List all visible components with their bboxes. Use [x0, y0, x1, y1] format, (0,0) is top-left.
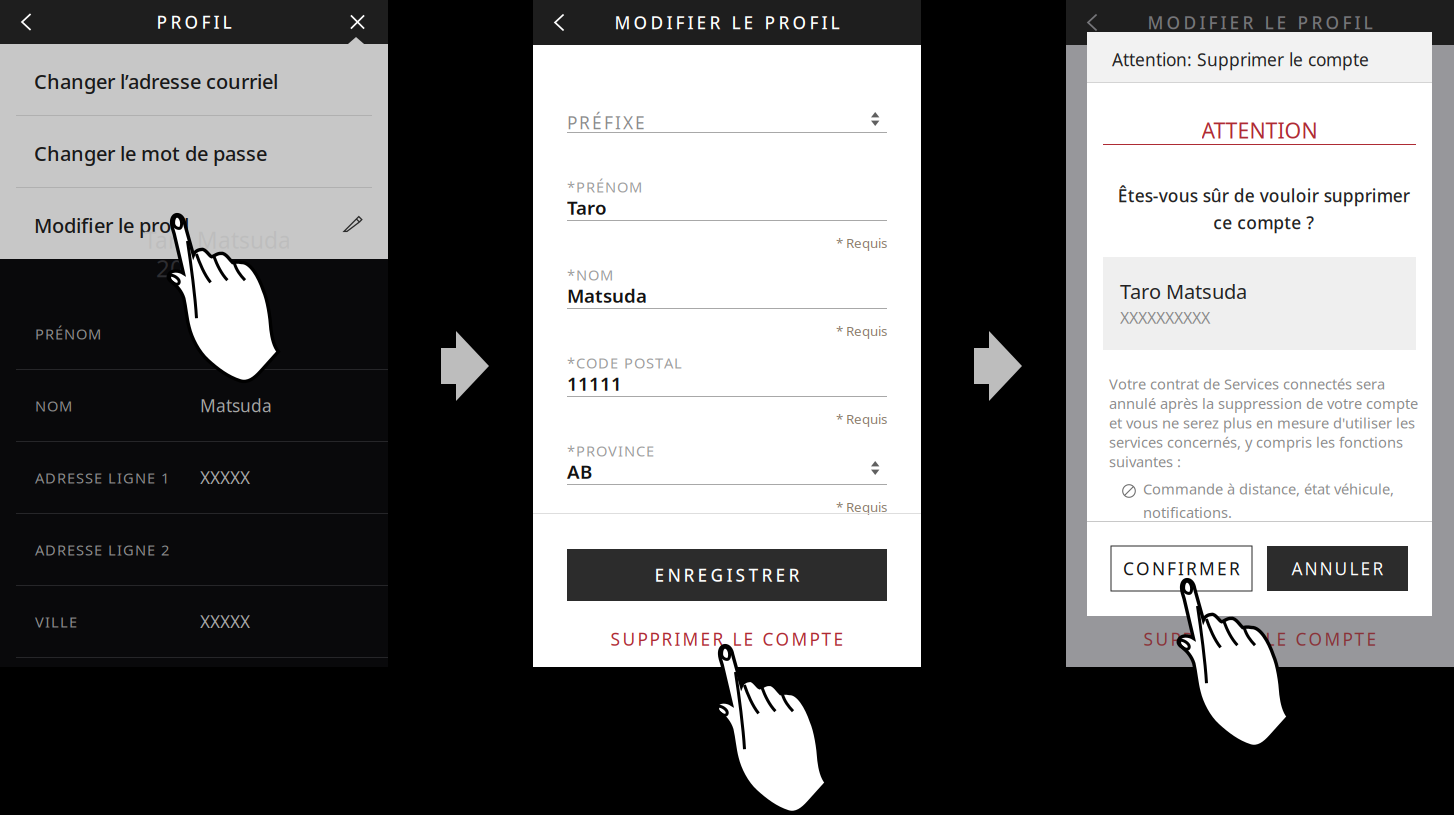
- staticText: Votre contrat de Services connectés sera…: [1109, 374, 1418, 471]
- staticText: S U P P R I M E R L E C O M P T E: [1143, 627, 1376, 650]
- staticText: Taro Matsuda: [144, 225, 291, 255]
- staticText: * Requis: [836, 498, 887, 516]
- staticText: P R É N O M: [35, 324, 101, 343]
- staticText: M O D I F I E R L E P R O F I L: [614, 11, 839, 34]
- staticText: Changer le mot de passe: [34, 140, 267, 167]
- staticText: A D R E S S E L I G N E 2: [35, 540, 169, 559]
- staticText: Changer l’adresse courriel: [34, 68, 278, 95]
- staticText: * P R O V I N C E: [567, 441, 654, 460]
- staticText: A N N U L E R: [1291, 557, 1383, 580]
- staticText: * C O D E P O S T A L: [567, 353, 682, 372]
- staticText: C O N F I R M E R: [1123, 557, 1240, 580]
- button[interactable]: Modifier le profil: [0, 187, 388, 259]
- staticText: Taro: [567, 195, 607, 220]
- staticText: Commande à distance, état véhicule, noti…: [1143, 479, 1394, 522]
- staticText: Taro Matsuda: [1120, 278, 1247, 305]
- button[interactable]: E N R E G I S T R E R: [533, 0, 887, 601]
- button[interactable]: S U P P R I M E R L E C O M P T E: [533, 0, 921, 650]
- staticText: P R É F I X E: [567, 111, 645, 134]
- staticText: * Requis: [836, 322, 887, 340]
- staticText: V I L L E: [35, 612, 77, 631]
- staticText: Modifier le profil: [34, 212, 189, 239]
- staticText: AB: [567, 459, 592, 484]
- button[interactable]: Back: [533, 0, 587, 45]
- staticText: S U P P R I M E R L E C O M P T E: [610, 627, 843, 650]
- staticText: XXXXXXXXXX: [1120, 307, 1210, 328]
- staticText: * N O M: [567, 265, 613, 284]
- staticText: Êtes-vous sûr de vouloir supprimer ce co…: [1117, 184, 1409, 234]
- staticText: E N R E G I S T R E R: [654, 563, 799, 586]
- staticText: M O D I F I E R L E P R O F I L: [1147, 11, 1372, 34]
- staticText: Matsuda: [200, 394, 272, 417]
- button[interactable]: Close: [334, 0, 388, 44]
- staticText: 202: [156, 252, 198, 284]
- button[interactable]: Back: [0, 0, 54, 44]
- staticText: 11111: [567, 371, 622, 396]
- button[interactable]: C O N F I R M E R: [1087, 32, 1252, 591]
- staticText: * Requis: [836, 234, 887, 252]
- staticText: * P R É N O M: [567, 177, 642, 196]
- button[interactable]: A N N U L E R: [1087, 32, 1408, 591]
- button[interactable]: Changer le mot de passe: [0, 115, 388, 187]
- staticText: A D R E S S E L I G N E 1: [35, 468, 169, 487]
- staticText: Matsuda: [567, 283, 647, 308]
- staticText: * Requis: [836, 410, 887, 428]
- button[interactable]: Changer l’adresse courriel: [0, 43, 388, 115]
- staticText: XXXXX: [200, 610, 250, 633]
- staticText: XXXXX: [200, 466, 250, 489]
- staticText: Attention: Supprimer le compte: [1112, 48, 1369, 71]
- staticText: P R O F I L: [156, 10, 231, 33]
- staticText: N O M: [35, 396, 72, 415]
- staticText: ATTENTION: [1201, 116, 1317, 144]
